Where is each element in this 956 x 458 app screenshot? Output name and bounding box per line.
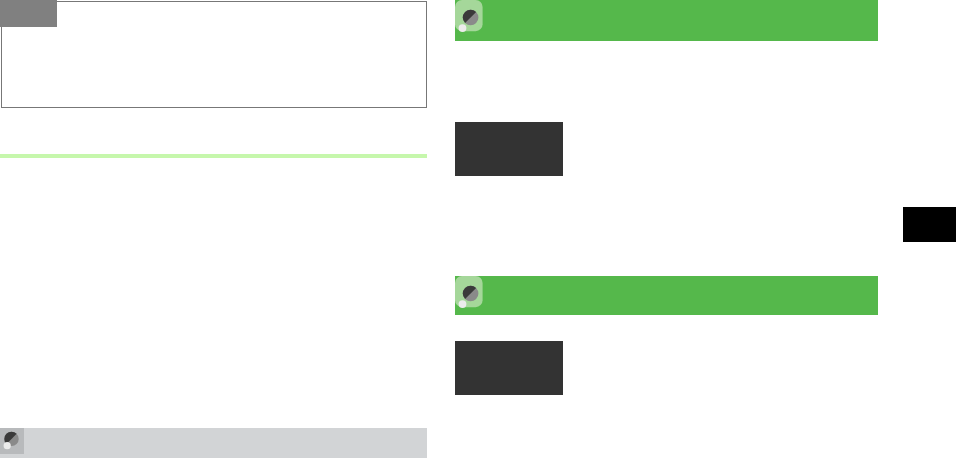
button[interactable] <box>455 0 878 41</box>
button[interactable] <box>0 428 427 458</box>
button[interactable] <box>455 276 878 315</box>
other: Image placeholder <box>0 428 24 454</box>
other: Image placeholder <box>455 0 485 38</box>
other: Image placeholder <box>455 276 485 314</box>
button[interactable] <box>1 1 427 108</box>
